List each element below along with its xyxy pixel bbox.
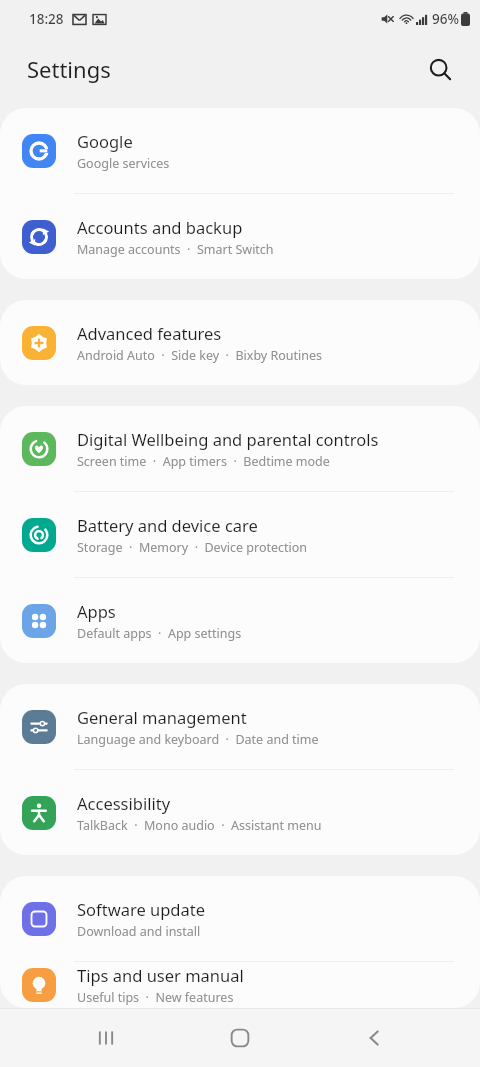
button[interactable]: Google bbox=[0, 108, 480, 193]
staticText: Accounts and backup bbox=[77, 216, 243, 238]
staticText: Tips and user manual bbox=[77, 964, 244, 986]
button[interactable]: Search bbox=[418, 47, 462, 91]
staticText: 18:28 bbox=[29, 10, 64, 28]
staticText: Storage · Memory · Device protection bbox=[77, 539, 308, 556]
staticText: Settings bbox=[27, 54, 111, 84]
staticText: Default apps · App settings bbox=[77, 625, 242, 642]
staticText: Software update bbox=[77, 898, 205, 920]
staticText: Apps bbox=[77, 600, 116, 622]
button[interactable]: Apps bbox=[0, 578, 480, 663]
button[interactable]: Battery and device care bbox=[0, 492, 480, 577]
staticText: Accessibility bbox=[77, 792, 171, 814]
staticText: Battery and device care bbox=[77, 514, 258, 536]
staticText: Android Auto · Side key · Bixby Routines bbox=[77, 347, 323, 364]
staticText: TalkBack · Mono audio · Assistant menu bbox=[77, 817, 322, 834]
staticText: Screen time · App timers · Bedtime mode bbox=[77, 453, 330, 470]
staticText: Google bbox=[77, 130, 133, 152]
staticText: Google services bbox=[77, 155, 170, 172]
staticText: Language and keyboard · Date and time bbox=[77, 731, 319, 748]
staticText: General management bbox=[77, 706, 247, 728]
staticText: Digital Wellbeing and parental controls bbox=[77, 428, 379, 450]
button[interactable]: Advanced features bbox=[0, 300, 480, 385]
button[interactable]: Software update bbox=[0, 876, 480, 961]
staticText: Advanced features bbox=[77, 322, 222, 344]
staticText: 96% bbox=[432, 10, 459, 28]
button[interactable]: Tips and user manual bbox=[0, 962, 480, 1008]
button[interactable]: Accessibility bbox=[0, 770, 480, 855]
button[interactable]: Home bbox=[211, 1009, 269, 1067]
button[interactable]: General management bbox=[0, 684, 480, 769]
button[interactable]: Recents bbox=[77, 1009, 135, 1067]
staticText: Download and install bbox=[77, 923, 201, 940]
button[interactable]: Digital Wellbeing and parental controls bbox=[0, 406, 480, 491]
button[interactable]: Back bbox=[346, 1009, 404, 1067]
staticText: Useful tips · New features bbox=[77, 989, 234, 1006]
staticText: Manage accounts · Smart Switch bbox=[77, 241, 274, 258]
button[interactable]: Accounts and backup bbox=[0, 194, 480, 279]
